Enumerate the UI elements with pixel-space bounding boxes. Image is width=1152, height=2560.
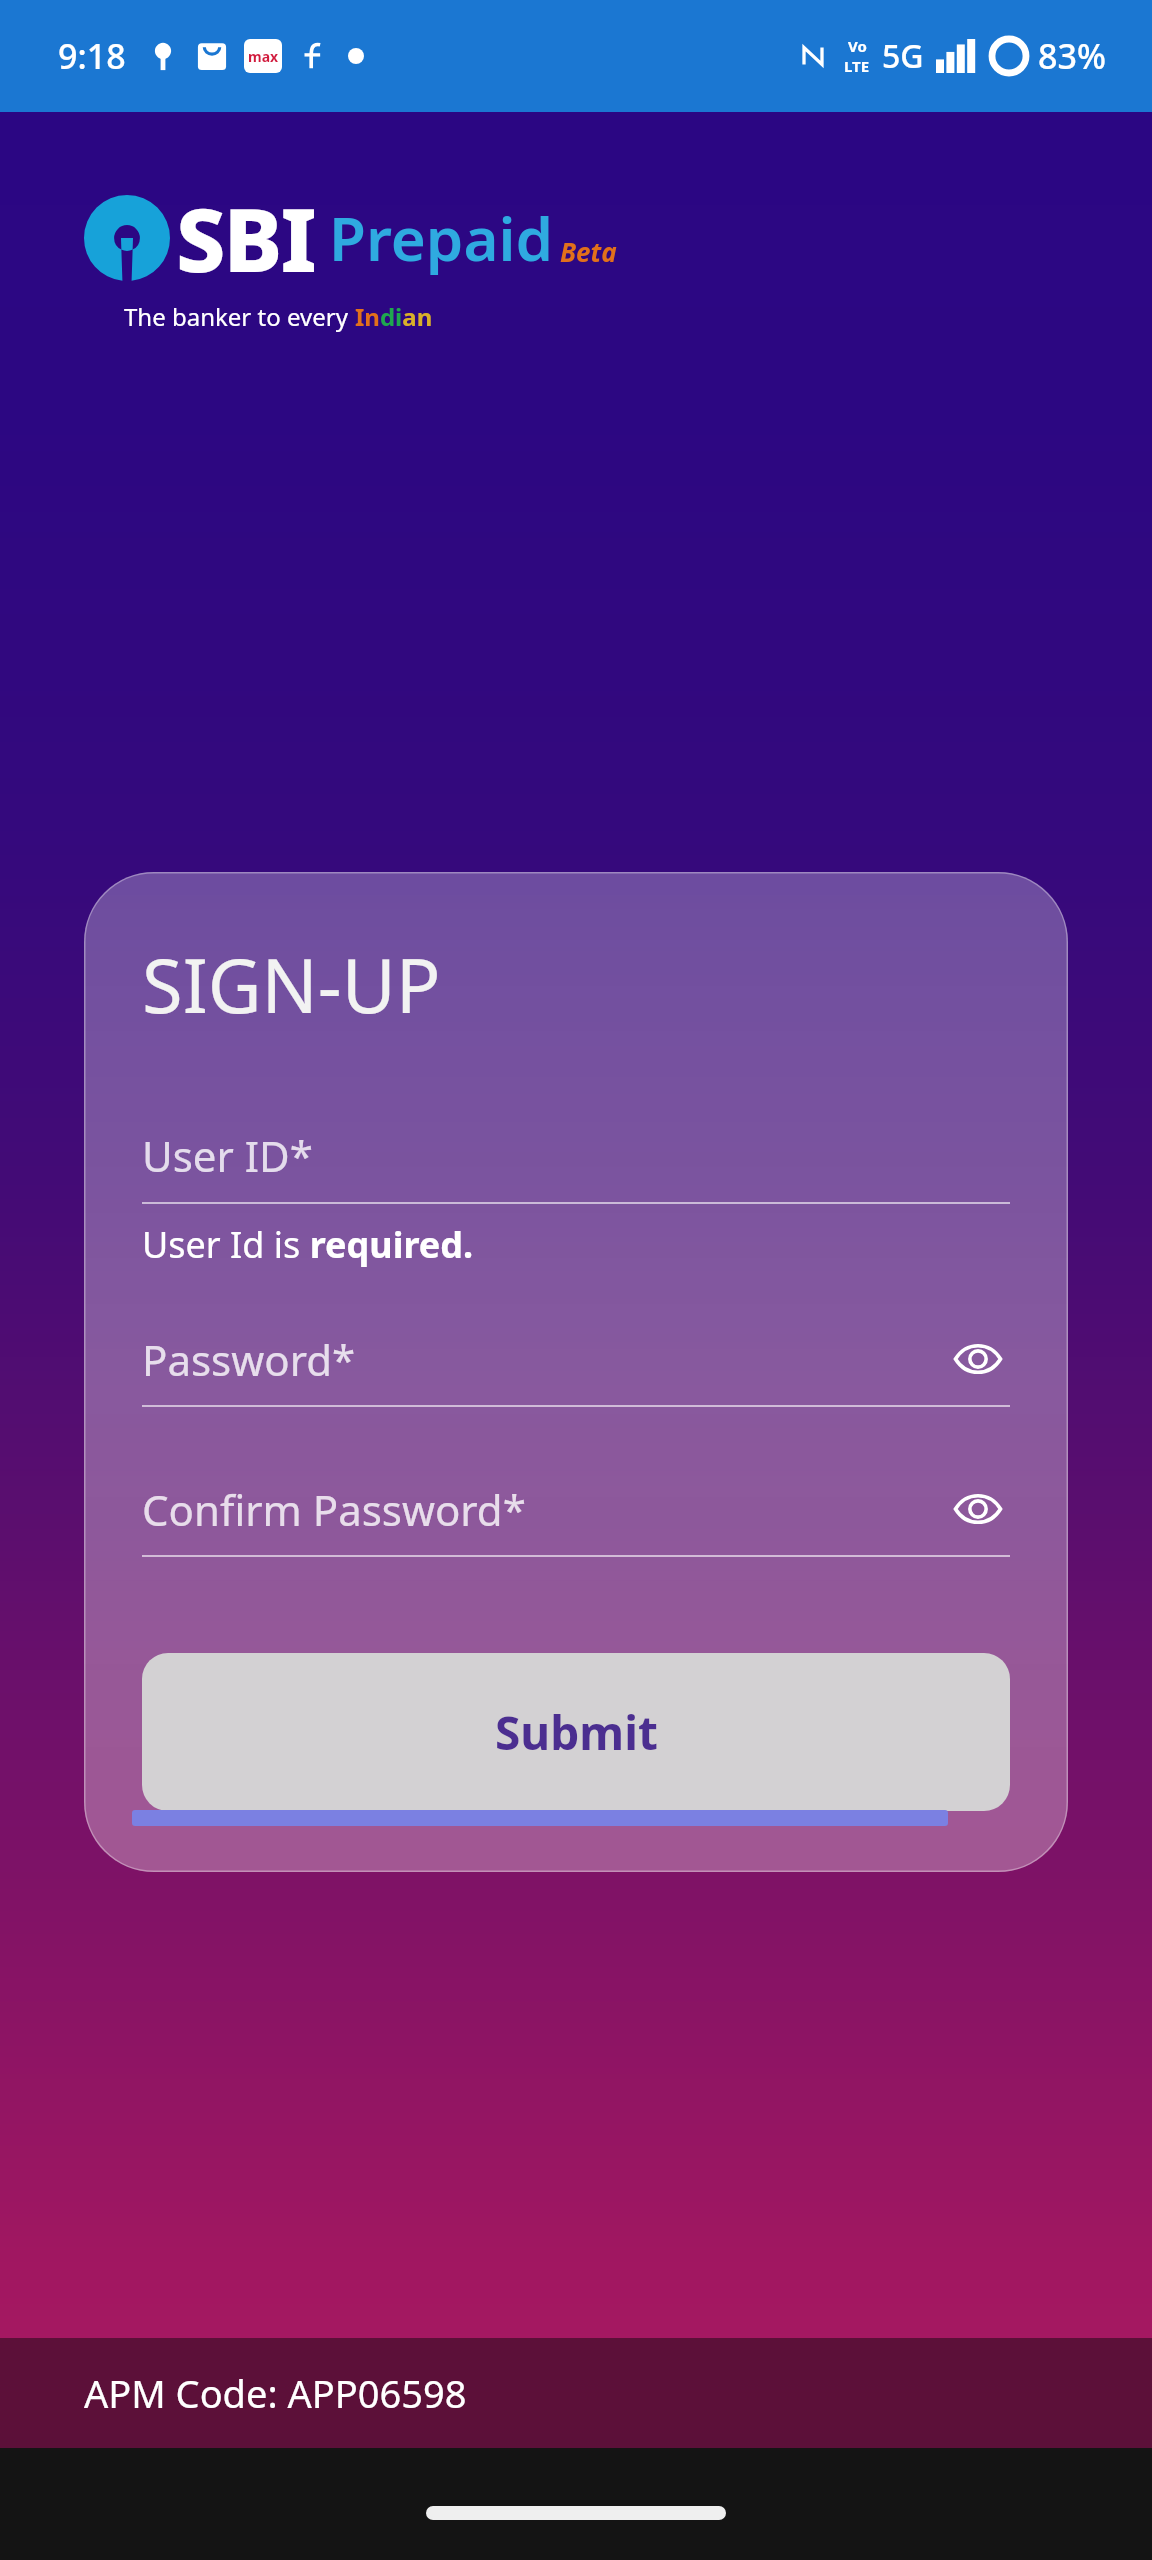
staticText: Beta — [560, 234, 617, 269]
button[interactable]: Confirm Password* — [142, 1477, 1010, 1557]
staticText: LTE — [844, 56, 870, 76]
staticText: Prepaid — [329, 197, 554, 279]
staticText: User Id is required. — [142, 1220, 474, 1269]
staticText: Submit — [495, 1701, 658, 1764]
staticText: Indian — [355, 300, 433, 333]
staticText: User ID* — [142, 1127, 313, 1184]
button[interactable]: User ID* — [142, 1127, 1010, 1204]
staticText: SBI — [176, 178, 315, 298]
staticText: The banker to every — [124, 300, 355, 333]
staticText: 83% — [1038, 33, 1106, 79]
staticText: APM Code: APP06598 — [84, 2367, 467, 2419]
staticText: max — [248, 47, 279, 66]
staticText: SIGN-UP — [142, 934, 441, 1035]
staticText: 9:18 — [58, 33, 126, 79]
staticText: Vo — [848, 36, 867, 56]
button[interactable]: Submit — [142, 1653, 1010, 1811]
button[interactable]: Password* — [142, 1327, 1010, 1407]
staticText: Password* — [142, 1331, 946, 1388]
staticText: Confirm Password* — [142, 1481, 946, 1538]
button[interactable]: Toggle password visibility — [946, 1327, 1010, 1391]
staticText: 5G — [882, 34, 924, 78]
button[interactable]: Toggle password visibility — [946, 1477, 1010, 1541]
